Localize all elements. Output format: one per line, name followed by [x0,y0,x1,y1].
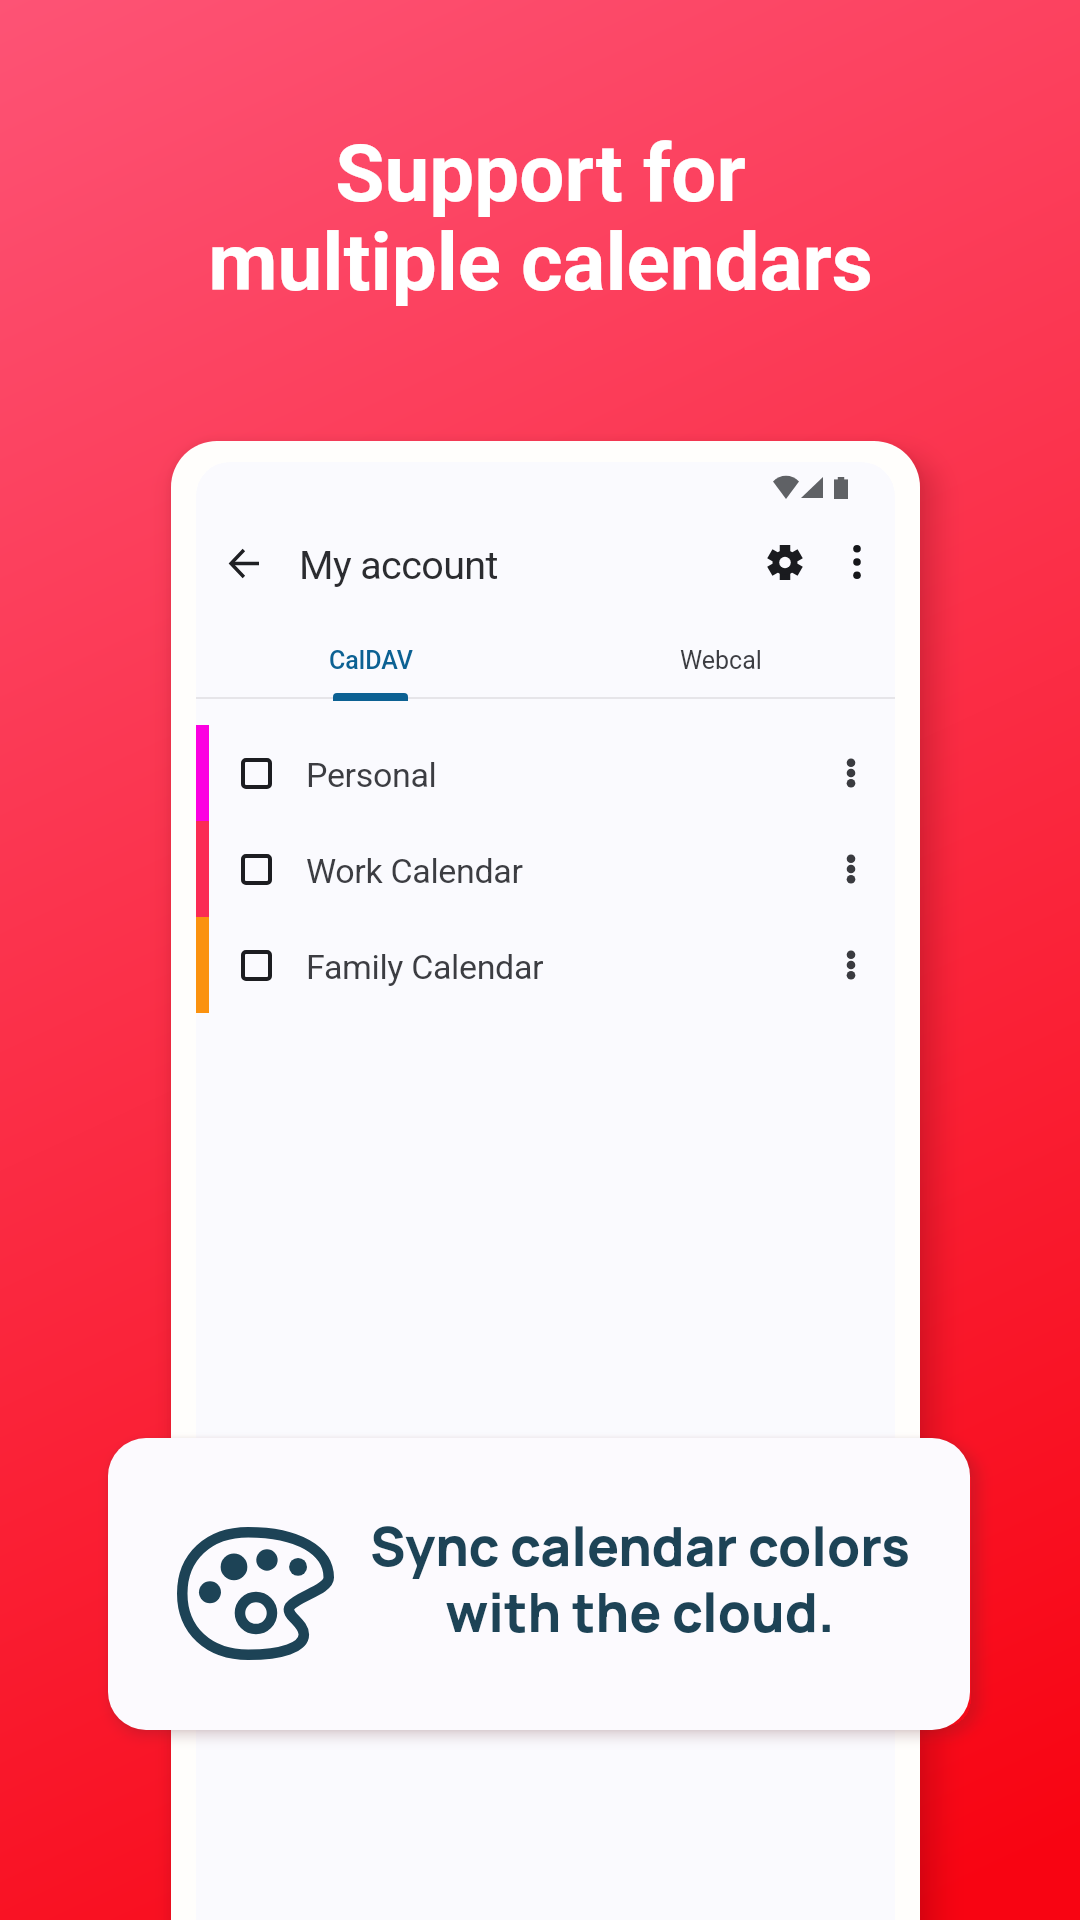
button[interactable]: Family Calendar [196,917,895,1013]
button[interactable]: Back [216,534,274,592]
button[interactable]: Calendar options [821,935,881,995]
staticText: CalDAV [329,646,413,675]
staticText: Webcal [680,646,762,675]
button[interactable]: Calendar options [821,839,881,899]
button[interactable]: Work Calendar [196,821,895,917]
button[interactable]: Settings [756,533,814,591]
staticText: My account [299,542,498,588]
button[interactable]: CalDAV [196,622,546,698]
button[interactable]: More options [828,533,886,591]
button[interactable]: Personal [196,725,895,821]
staticText: Personal [306,755,437,795]
button[interactable]: Webcal [546,622,895,698]
button[interactable]: Calendar options [821,743,881,803]
staticText: Family Calendar [306,947,544,987]
staticText: Sync calendar colors with the cloud. [340,1510,940,1648]
staticText: Support for multiple calendars [208,127,873,309]
staticText: Work Calendar [306,851,523,891]
